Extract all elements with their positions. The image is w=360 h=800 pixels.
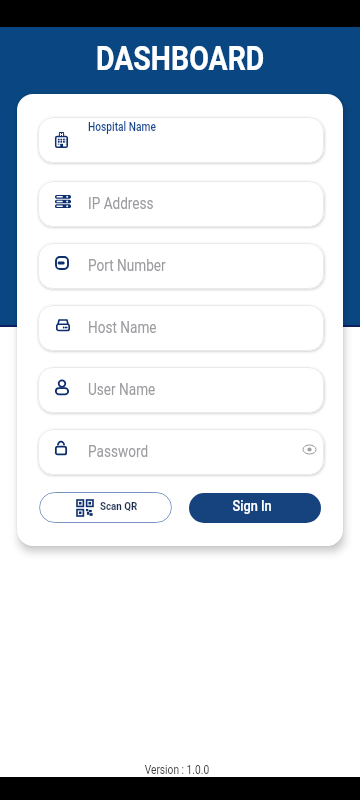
button[interactable]: Port Number — [38, 243, 324, 289]
button[interactable]: Password — [38, 429, 324, 475]
button[interactable]: Hospital Name — [38, 117, 324, 163]
staticText: Scan QR — [100, 499, 137, 512]
staticText: DASHBOARD — [96, 39, 265, 78]
staticText: Sign In — [232, 497, 272, 515]
button[interactable]: Sign In — [189, 493, 321, 523]
staticText: IP Address — [88, 194, 154, 213]
button[interactable]: User Name — [38, 367, 324, 413]
button[interactable]: Host Name — [38, 305, 324, 351]
button[interactable] — [294, 434, 324, 464]
button[interactable]: Scan QR — [39, 492, 172, 523]
staticText: User Name — [88, 380, 156, 399]
staticText: Hospital Name — [88, 120, 156, 134]
staticText: Password — [88, 442, 148, 461]
staticText: Host Name — [88, 318, 157, 337]
staticText: Port Number — [88, 256, 166, 275]
button[interactable]: IP Address — [38, 181, 324, 227]
staticText: Version : 1.0.0 — [145, 763, 209, 777]
